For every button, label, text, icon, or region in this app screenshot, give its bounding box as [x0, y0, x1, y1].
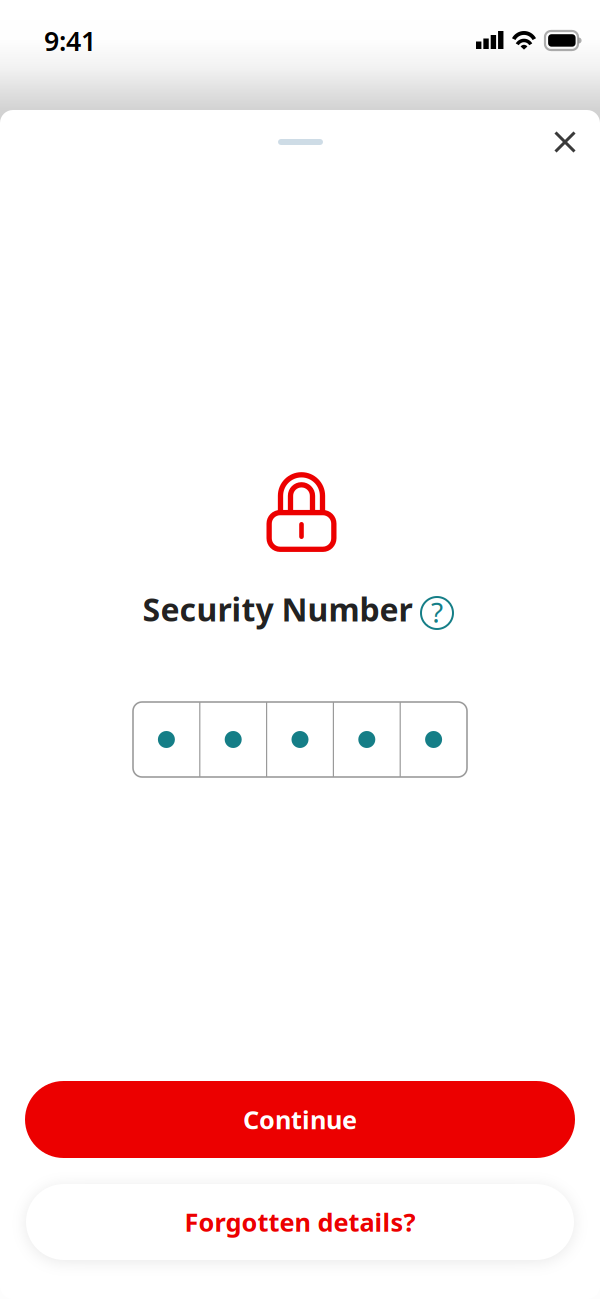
button[interactable]: Continue — [25, 1081, 575, 1158]
staticText: Continue — [243, 1103, 357, 1136]
staticText: Security Number — [142, 588, 412, 630]
staticText: 9:41 — [44, 23, 96, 58]
button[interactable]: Close — [537, 114, 593, 170]
button[interactable]: Forgotten details? — [26, 1184, 574, 1260]
staticText: ? — [431, 593, 443, 631]
staticText: Forgotten details? — [184, 1205, 415, 1239]
